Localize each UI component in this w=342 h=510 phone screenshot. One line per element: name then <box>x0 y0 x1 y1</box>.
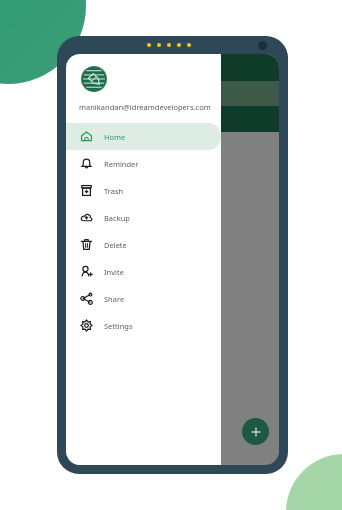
button[interactable]: Trash <box>66 177 221 204</box>
button[interactable]: Settings <box>66 312 221 339</box>
staticText: Trash <box>104 186 124 196</box>
button[interactable]: Share <box>66 285 221 312</box>
staticText: manikandan@idreamdevelopers.com <box>79 102 211 112</box>
staticText: Delete <box>104 240 127 250</box>
button[interactable]: Invite <box>66 258 221 285</box>
button[interactable]: Delete <box>66 231 221 258</box>
button[interactable]: Reminder <box>66 150 221 177</box>
staticText: Reminder <box>104 159 139 169</box>
staticText: Settings <box>104 321 133 331</box>
staticText: Invite <box>104 267 124 277</box>
button[interactable]: Add note <box>242 418 269 445</box>
button[interactable]: Backup <box>66 204 221 231</box>
staticText: Share <box>104 294 125 304</box>
button[interactable]: Home <box>66 123 221 150</box>
staticText: Backup <box>104 213 130 223</box>
staticText: Home <box>104 132 126 142</box>
